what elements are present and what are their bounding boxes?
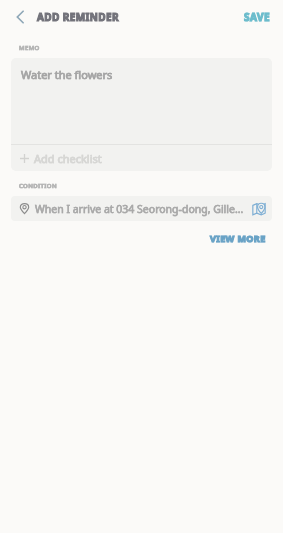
staticText: MEMO <box>19 44 40 52</box>
button[interactable]: Add checklist <box>11 145 272 171</box>
staticText: MEMO <box>19 44 40 52</box>
button[interactable]: SAVE <box>232 4 283 30</box>
staticText: VIEW MORE <box>210 232 266 244</box>
staticText: Water the flowers <box>21 67 113 82</box>
staticText: SAVE <box>244 10 271 24</box>
staticText: Add checklist <box>34 151 102 166</box>
staticText: VIEW MORE <box>210 232 266 244</box>
staticText: When I arrive at 034 Seorong-dong, Gille… <box>35 202 244 216</box>
button[interactable]: When I arrive at 034 Seorong-dong, Gille… <box>11 196 272 221</box>
staticText: ADD REMINDER <box>37 10 120 24</box>
staticText: SAVE <box>244 10 271 24</box>
button[interactable]: Show on map <box>250 200 268 218</box>
button[interactable]: VIEW MORE <box>204 229 272 247</box>
staticText: Water the flowers <box>21 67 113 82</box>
staticText: CONDITION <box>19 182 58 190</box>
button[interactable]: Back <box>8 5 32 29</box>
staticText: Add checklist <box>34 151 102 166</box>
staticText: When I arrive at 034 Seorong-dong, Gille… <box>35 202 244 216</box>
staticText: ADD REMINDER <box>37 10 120 24</box>
staticText: CONDITION <box>19 182 58 190</box>
